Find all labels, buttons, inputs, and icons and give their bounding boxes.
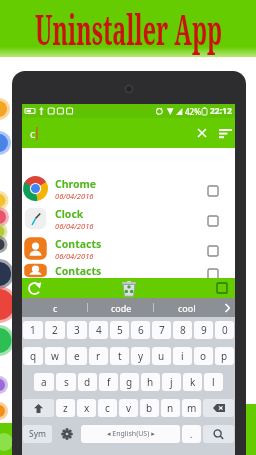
button[interactable]: f <box>99 373 118 391</box>
button[interactable]: Sym <box>23 425 52 443</box>
staticText: x <box>84 401 90 415</box>
staticText: c <box>30 126 36 141</box>
button[interactable]: 5 <box>110 321 129 339</box>
staticText: 22:12 <box>210 105 232 117</box>
button[interactable]: 8 <box>173 321 192 339</box>
staticText: t <box>118 349 122 363</box>
button[interactable]: 7 <box>152 321 171 339</box>
staticText: Contacts <box>55 237 102 251</box>
button[interactable]: h <box>141 373 160 391</box>
button[interactable]: o <box>194 347 213 365</box>
button[interactable]: x <box>77 399 96 417</box>
staticText: ◂ English(US) ▸ <box>107 429 155 439</box>
staticText: 7 <box>159 323 165 337</box>
button[interactable]: . <box>182 425 201 443</box>
button[interactable]: Select all <box>213 279 231 297</box>
button[interactable]: z <box>56 399 75 417</box>
staticText: j <box>170 375 173 389</box>
button[interactable]: 4 <box>89 321 108 339</box>
button[interactable]: 2 <box>45 321 65 339</box>
button[interactable]: w <box>45 347 65 365</box>
button[interactable]: Chrome <box>22 173 235 203</box>
button[interactable]: Shift <box>23 399 54 417</box>
button[interactable]: a <box>34 373 54 391</box>
button[interactable]: Refresh <box>25 279 43 297</box>
button[interactable]: v <box>119 399 138 417</box>
button[interactable]: Contacts <box>22 233 235 263</box>
button[interactable]: e <box>67 347 87 365</box>
button[interactable]: Clock <box>22 203 235 233</box>
button[interactable]: k <box>183 373 202 391</box>
staticText: 4 <box>96 323 102 337</box>
button[interactable]: ◂ English(US) ▸ <box>81 425 180 443</box>
button[interactable]: y <box>131 347 150 365</box>
staticText: 06/04/2016 <box>55 251 94 261</box>
staticText: m <box>187 401 197 415</box>
button[interactable]: p <box>215 347 234 365</box>
button[interactable]: c <box>22 298 88 317</box>
staticText: d <box>84 375 91 389</box>
staticText: 06/04/2016 <box>55 221 94 231</box>
button[interactable]: m <box>182 399 201 417</box>
staticText: Chrome <box>55 177 97 191</box>
button[interactable]: s <box>56 373 76 391</box>
staticText: 3 <box>74 323 80 337</box>
staticText: 0 <box>222 323 228 337</box>
button[interactable]: r <box>89 347 108 365</box>
button[interactable]: d <box>78 373 97 391</box>
button[interactable]: Select app <box>200 208 226 234</box>
button[interactable]: j <box>162 373 181 391</box>
staticText: z <box>63 401 68 415</box>
button[interactable]: l <box>204 373 223 391</box>
button[interactable]: 9 <box>194 321 213 339</box>
staticText: 2 <box>52 323 58 337</box>
staticText: 06/04/2016 <box>55 191 94 201</box>
button[interactable]: code <box>88 298 154 317</box>
staticText: Sym <box>29 428 46 440</box>
button[interactable]: Select app <box>200 266 226 278</box>
button[interactable]: i <box>173 347 192 365</box>
button[interactable]: n <box>161 399 180 417</box>
staticText: n <box>167 401 174 415</box>
button[interactable]: 0 <box>215 321 234 339</box>
staticText: k <box>190 375 196 389</box>
staticText: Uninstaller App <box>35 0 222 57</box>
staticText: h <box>147 375 154 389</box>
button[interactable]: Select app <box>200 178 226 204</box>
staticText: f <box>107 375 111 389</box>
staticText: 9 <box>201 323 207 337</box>
button[interactable]: q <box>23 347 43 365</box>
staticText: o <box>200 349 207 363</box>
button[interactable]: cool <box>154 298 220 317</box>
staticText: e <box>74 349 80 363</box>
button[interactable]: Keyboard settings <box>53 421 80 447</box>
button[interactable]: 6 <box>131 321 150 339</box>
button[interactable]: Sort <box>216 124 234 142</box>
staticText: i <box>181 349 184 363</box>
button[interactable]: c <box>98 399 117 417</box>
staticText: a <box>41 375 47 389</box>
button[interactable]: b <box>140 399 159 417</box>
staticText: l <box>212 375 215 389</box>
staticText: p <box>221 349 228 363</box>
button[interactable]: Clear search <box>193 124 211 142</box>
button[interactable]: g <box>120 373 139 391</box>
button[interactable]: t <box>110 347 129 365</box>
button[interactable]: 1 <box>23 321 43 339</box>
staticText: 5 <box>117 323 123 337</box>
staticText: 42% <box>185 106 201 117</box>
button[interactable]: 3 <box>67 321 87 339</box>
button[interactable]: u <box>152 347 171 365</box>
staticText: 6 <box>138 323 144 337</box>
staticText: q <box>30 349 37 363</box>
button[interactable]: Backspace <box>203 399 234 417</box>
button[interactable]: Search <box>203 425 234 443</box>
staticText: cool <box>178 302 196 314</box>
staticText: c <box>105 401 110 415</box>
button[interactable]: Contacts <box>22 263 235 278</box>
button[interactable]: More suggestions <box>220 298 235 317</box>
staticText: . <box>190 428 193 440</box>
button[interactable]: Uninstall selected <box>119 279 138 298</box>
staticText: c <box>53 302 58 314</box>
button[interactable]: Select app <box>200 238 226 264</box>
